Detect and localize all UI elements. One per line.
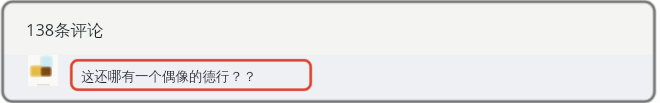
button[interactable]: 138条评论 <box>26 18 104 40</box>
button[interactable]: 这还哪有一个偶像的德行？？ <box>70 59 312 91</box>
staticText: 138条评论 <box>26 18 104 40</box>
staticText: 这还哪有一个偶像的德行？？ <box>81 68 257 85</box>
button[interactable]: User avatar <box>28 55 58 86</box>
